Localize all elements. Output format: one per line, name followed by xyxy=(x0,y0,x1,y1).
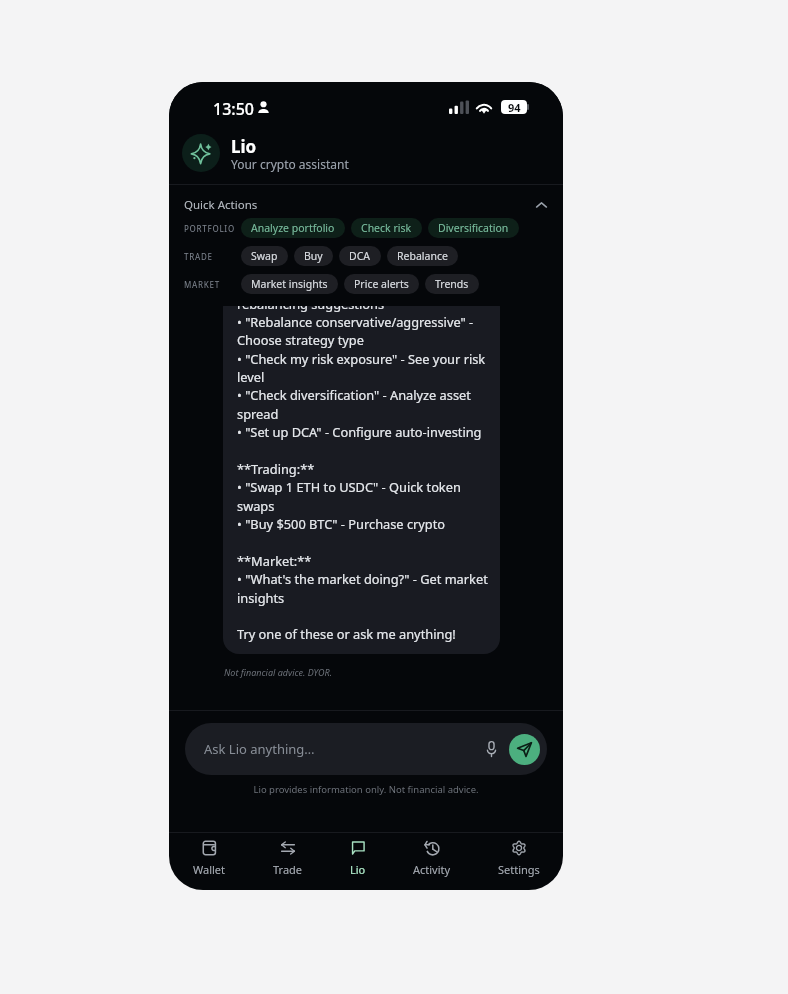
staticText: Your crypto assistant xyxy=(231,156,349,172)
button[interactable]: Send message xyxy=(509,734,540,765)
staticText: swaps xyxy=(237,497,275,514)
staticText: • "Buy $500 BTC" - Purchase crypto xyxy=(237,515,446,532)
button[interactable]: Analyze portfolio xyxy=(241,218,345,238)
staticText: 94 xyxy=(508,100,521,114)
staticText: • "Swap 1 ETH to USDC" - Quick token xyxy=(237,478,461,495)
staticText: Price alerts xyxy=(354,277,409,291)
staticText: Diversification xyxy=(438,221,509,235)
button[interactable]: Activity xyxy=(413,833,451,890)
staticText: Trade xyxy=(273,862,303,877)
staticText: PORTFOLIO xyxy=(184,223,235,234)
staticText: Trends xyxy=(435,277,469,291)
staticText: Lio xyxy=(350,862,366,877)
button[interactable]: Rebalance xyxy=(387,246,458,266)
button[interactable]: Price alerts xyxy=(344,274,419,294)
button[interactable]: Trade xyxy=(273,833,303,890)
button[interactable]: Quick Actions xyxy=(169,192,563,218)
staticText: rebalancing suggestions xyxy=(237,295,385,312)
staticText: level xyxy=(237,368,265,385)
staticText: Ask Lio anything… xyxy=(204,740,315,758)
staticText: Wallet xyxy=(193,862,226,877)
staticText: • "What's the market doing?" - Get marke… xyxy=(237,570,488,587)
button[interactable]: Ask Lio anything… xyxy=(185,723,547,775)
button[interactable]: Check risk xyxy=(351,218,422,238)
staticText: **Market:** xyxy=(237,552,312,569)
staticText: spread xyxy=(237,405,279,422)
button[interactable]: Buy xyxy=(294,246,333,266)
staticText: Rebalance xyxy=(397,249,448,263)
staticText: Analyze portfolio xyxy=(251,221,335,235)
staticText: Lio provides information only. Not finan… xyxy=(253,783,479,796)
staticText: • "Check diversification" - Analyze asse… xyxy=(237,386,471,403)
button[interactable]: DCA xyxy=(339,246,381,266)
staticText: Swap xyxy=(251,249,278,263)
staticText: Lio xyxy=(231,135,257,158)
staticText: insights xyxy=(237,589,285,606)
button[interactable]: Diversification xyxy=(428,218,519,238)
button[interactable]: Lio xyxy=(350,833,366,890)
staticText: MARKET xyxy=(184,279,220,290)
staticText: • "Rebalance conservative/aggressive" - xyxy=(237,313,474,330)
button[interactable]: Swap xyxy=(241,246,288,266)
staticText: Choose strategy type xyxy=(237,331,364,348)
staticText: DCA xyxy=(349,249,371,263)
button[interactable]: Market insights xyxy=(241,274,338,294)
button[interactable]: Trends xyxy=(425,274,479,294)
staticText: • "Check my risk exposure" - See your ri… xyxy=(237,350,486,367)
staticText: Not financial advice. DYOR. xyxy=(224,666,332,678)
staticText: Check risk xyxy=(361,221,412,235)
staticText: Market insights xyxy=(251,277,328,291)
staticText: 13:50 xyxy=(213,98,254,120)
staticText: Settings xyxy=(498,862,540,877)
staticText: Buy xyxy=(304,249,323,263)
staticText: Quick Actions xyxy=(184,197,258,213)
staticText: TRADE xyxy=(184,251,213,262)
staticText: Activity xyxy=(413,862,451,877)
staticText: Try one of these or ask me anything! xyxy=(237,625,456,642)
staticText: **Trading:** xyxy=(237,460,315,477)
button[interactable]: Settings xyxy=(498,833,540,890)
button[interactable]: Voice input xyxy=(480,738,502,760)
button[interactable]: Wallet xyxy=(193,833,226,890)
staticText: • "Set up DCA" - Configure auto-investin… xyxy=(237,423,482,440)
